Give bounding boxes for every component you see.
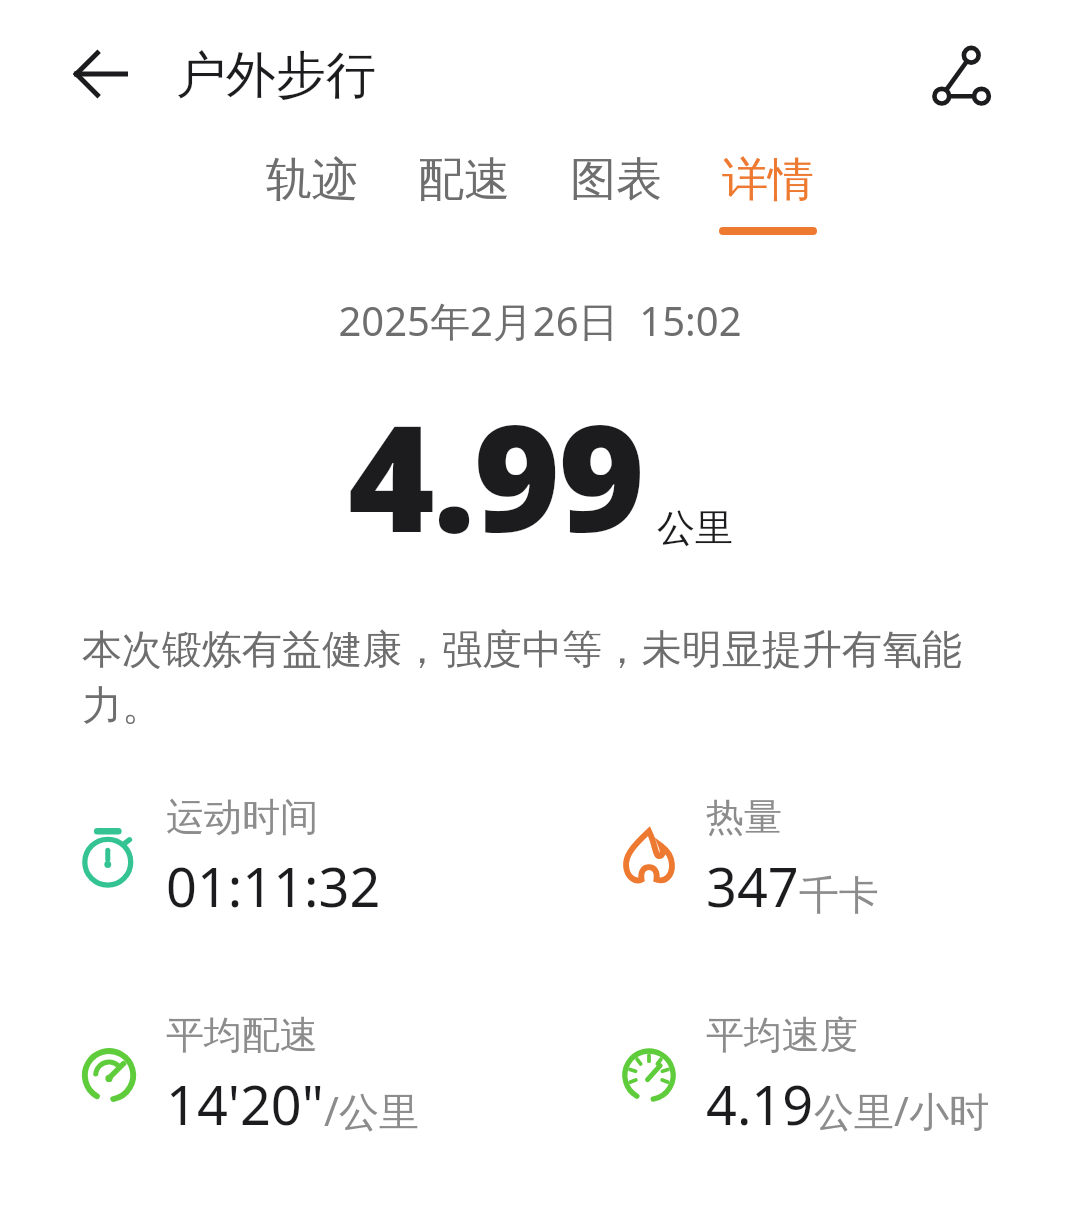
staticText: 公里 bbox=[657, 504, 733, 552]
button[interactable]: Share bbox=[920, 36, 1002, 118]
staticText: 01:11:32 bbox=[166, 849, 381, 923]
button[interactable]: 配速 bbox=[411, 145, 517, 241]
staticText: 户外步行 bbox=[176, 44, 376, 107]
button[interactable]: Back bbox=[58, 32, 142, 116]
staticText: 本次锻炼有益健康，强度中等，未明显提升有氧能力。 bbox=[82, 624, 1032, 731]
staticText: 4.19 bbox=[706, 1067, 814, 1141]
staticText: 热量 bbox=[706, 793, 782, 841]
staticText: 配速 bbox=[418, 151, 510, 209]
staticText: 运动时间 bbox=[166, 793, 318, 841]
staticText: 公里/小时 bbox=[814, 1083, 989, 1138]
button[interactable]: 运动时间 bbox=[74, 793, 540, 923]
button[interactable]: 热量 bbox=[614, 793, 1080, 923]
staticText: 详情 bbox=[722, 151, 814, 209]
button[interactable]: 平均配速 bbox=[74, 1011, 540, 1141]
staticText: 2025年2月26日 15:02 bbox=[0, 293, 1080, 348]
button[interactable]: 轨迹 bbox=[259, 145, 365, 241]
button[interactable]: 详情 bbox=[715, 145, 821, 241]
staticText: /公里 bbox=[324, 1083, 419, 1138]
staticText: 14'20" bbox=[166, 1067, 324, 1141]
staticText: 轨迹 bbox=[266, 151, 358, 209]
staticText: 平均配速 bbox=[166, 1011, 318, 1059]
staticText: 4.99 bbox=[348, 374, 643, 576]
staticText: 平均速度 bbox=[706, 1011, 858, 1059]
button[interactable]: 平均速度 bbox=[614, 1011, 1080, 1141]
staticText: 347 bbox=[706, 849, 799, 923]
staticText: 图表 bbox=[570, 151, 662, 209]
staticText: 千卡 bbox=[799, 870, 879, 920]
button[interactable]: 图表 bbox=[563, 145, 669, 241]
